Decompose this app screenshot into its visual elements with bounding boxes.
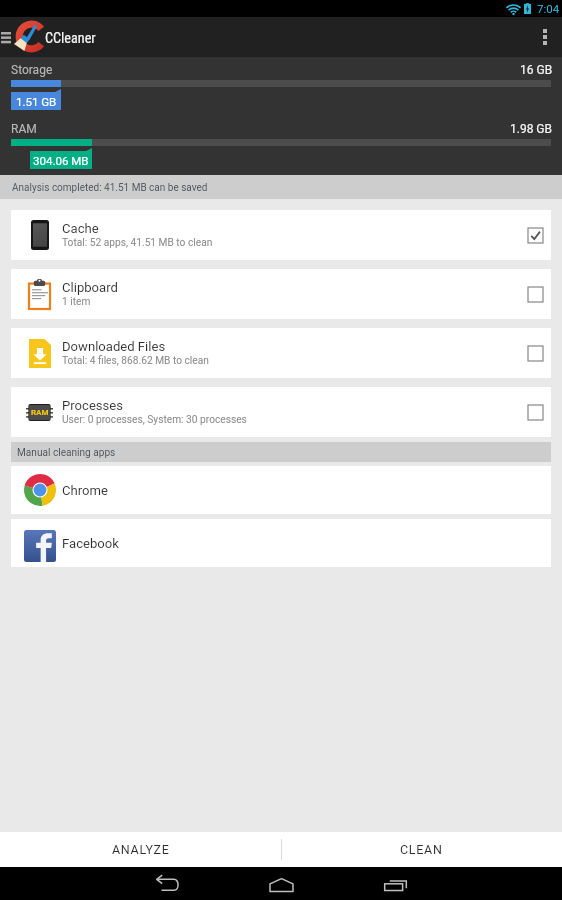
staticText: RAM — [11, 122, 37, 136]
staticText: Total: 52 apps, 41.51 MB to clean — [62, 237, 213, 249]
staticText: Processes — [62, 398, 124, 413]
staticText: User: 0 processes, System: 30 processes — [62, 414, 247, 426]
button[interactable]: Back — [139, 867, 195, 900]
staticText: 7:04 — [537, 2, 560, 15]
button[interactable]: CLEAN — [281, 832, 562, 867]
staticText: 1.98 GB — [510, 122, 553, 136]
button[interactable]: Facebook — [11, 519, 551, 567]
button[interactable]: Home — [253, 867, 309, 900]
staticText: Manual cleaning apps — [17, 447, 116, 459]
staticText: 1 item — [62, 296, 91, 308]
staticText: Analysis completed: 41.51 MB can be save… — [12, 182, 208, 194]
button[interactable]: Recent apps — [367, 867, 423, 900]
staticText: Downloaded Files — [62, 339, 166, 354]
button[interactable]: Chrome — [11, 466, 551, 514]
staticText: Total: 4 files, 868.62 MB to clean — [62, 355, 209, 367]
staticText: CCleaner — [45, 30, 96, 47]
button[interactable]: RAM — [11, 387, 551, 437]
staticText: ANALYZE — [112, 842, 170, 857]
staticText: Storage — [11, 63, 53, 77]
button[interactable]: Navigation menu — [0, 17, 14, 57]
staticText: CLEAN — [400, 842, 443, 857]
staticText: Clipboard — [62, 280, 118, 295]
staticText: Chrome — [62, 483, 108, 498]
staticText: 304.06 MB — [33, 154, 89, 167]
button[interactable]: More options — [527, 17, 562, 57]
staticText: 1.51 GB — [16, 95, 57, 108]
button[interactable]: Clipboard — [11, 269, 551, 319]
button[interactable]: Downloaded Files — [11, 328, 551, 378]
staticText: RAM — [31, 408, 49, 417]
button[interactable]: ANALYZE — [0, 832, 281, 867]
staticText: Cache — [62, 221, 99, 236]
staticText: Facebook — [62, 536, 119, 551]
button[interactable]: Cache — [11, 210, 551, 260]
staticText: 16 GB — [520, 63, 553, 77]
